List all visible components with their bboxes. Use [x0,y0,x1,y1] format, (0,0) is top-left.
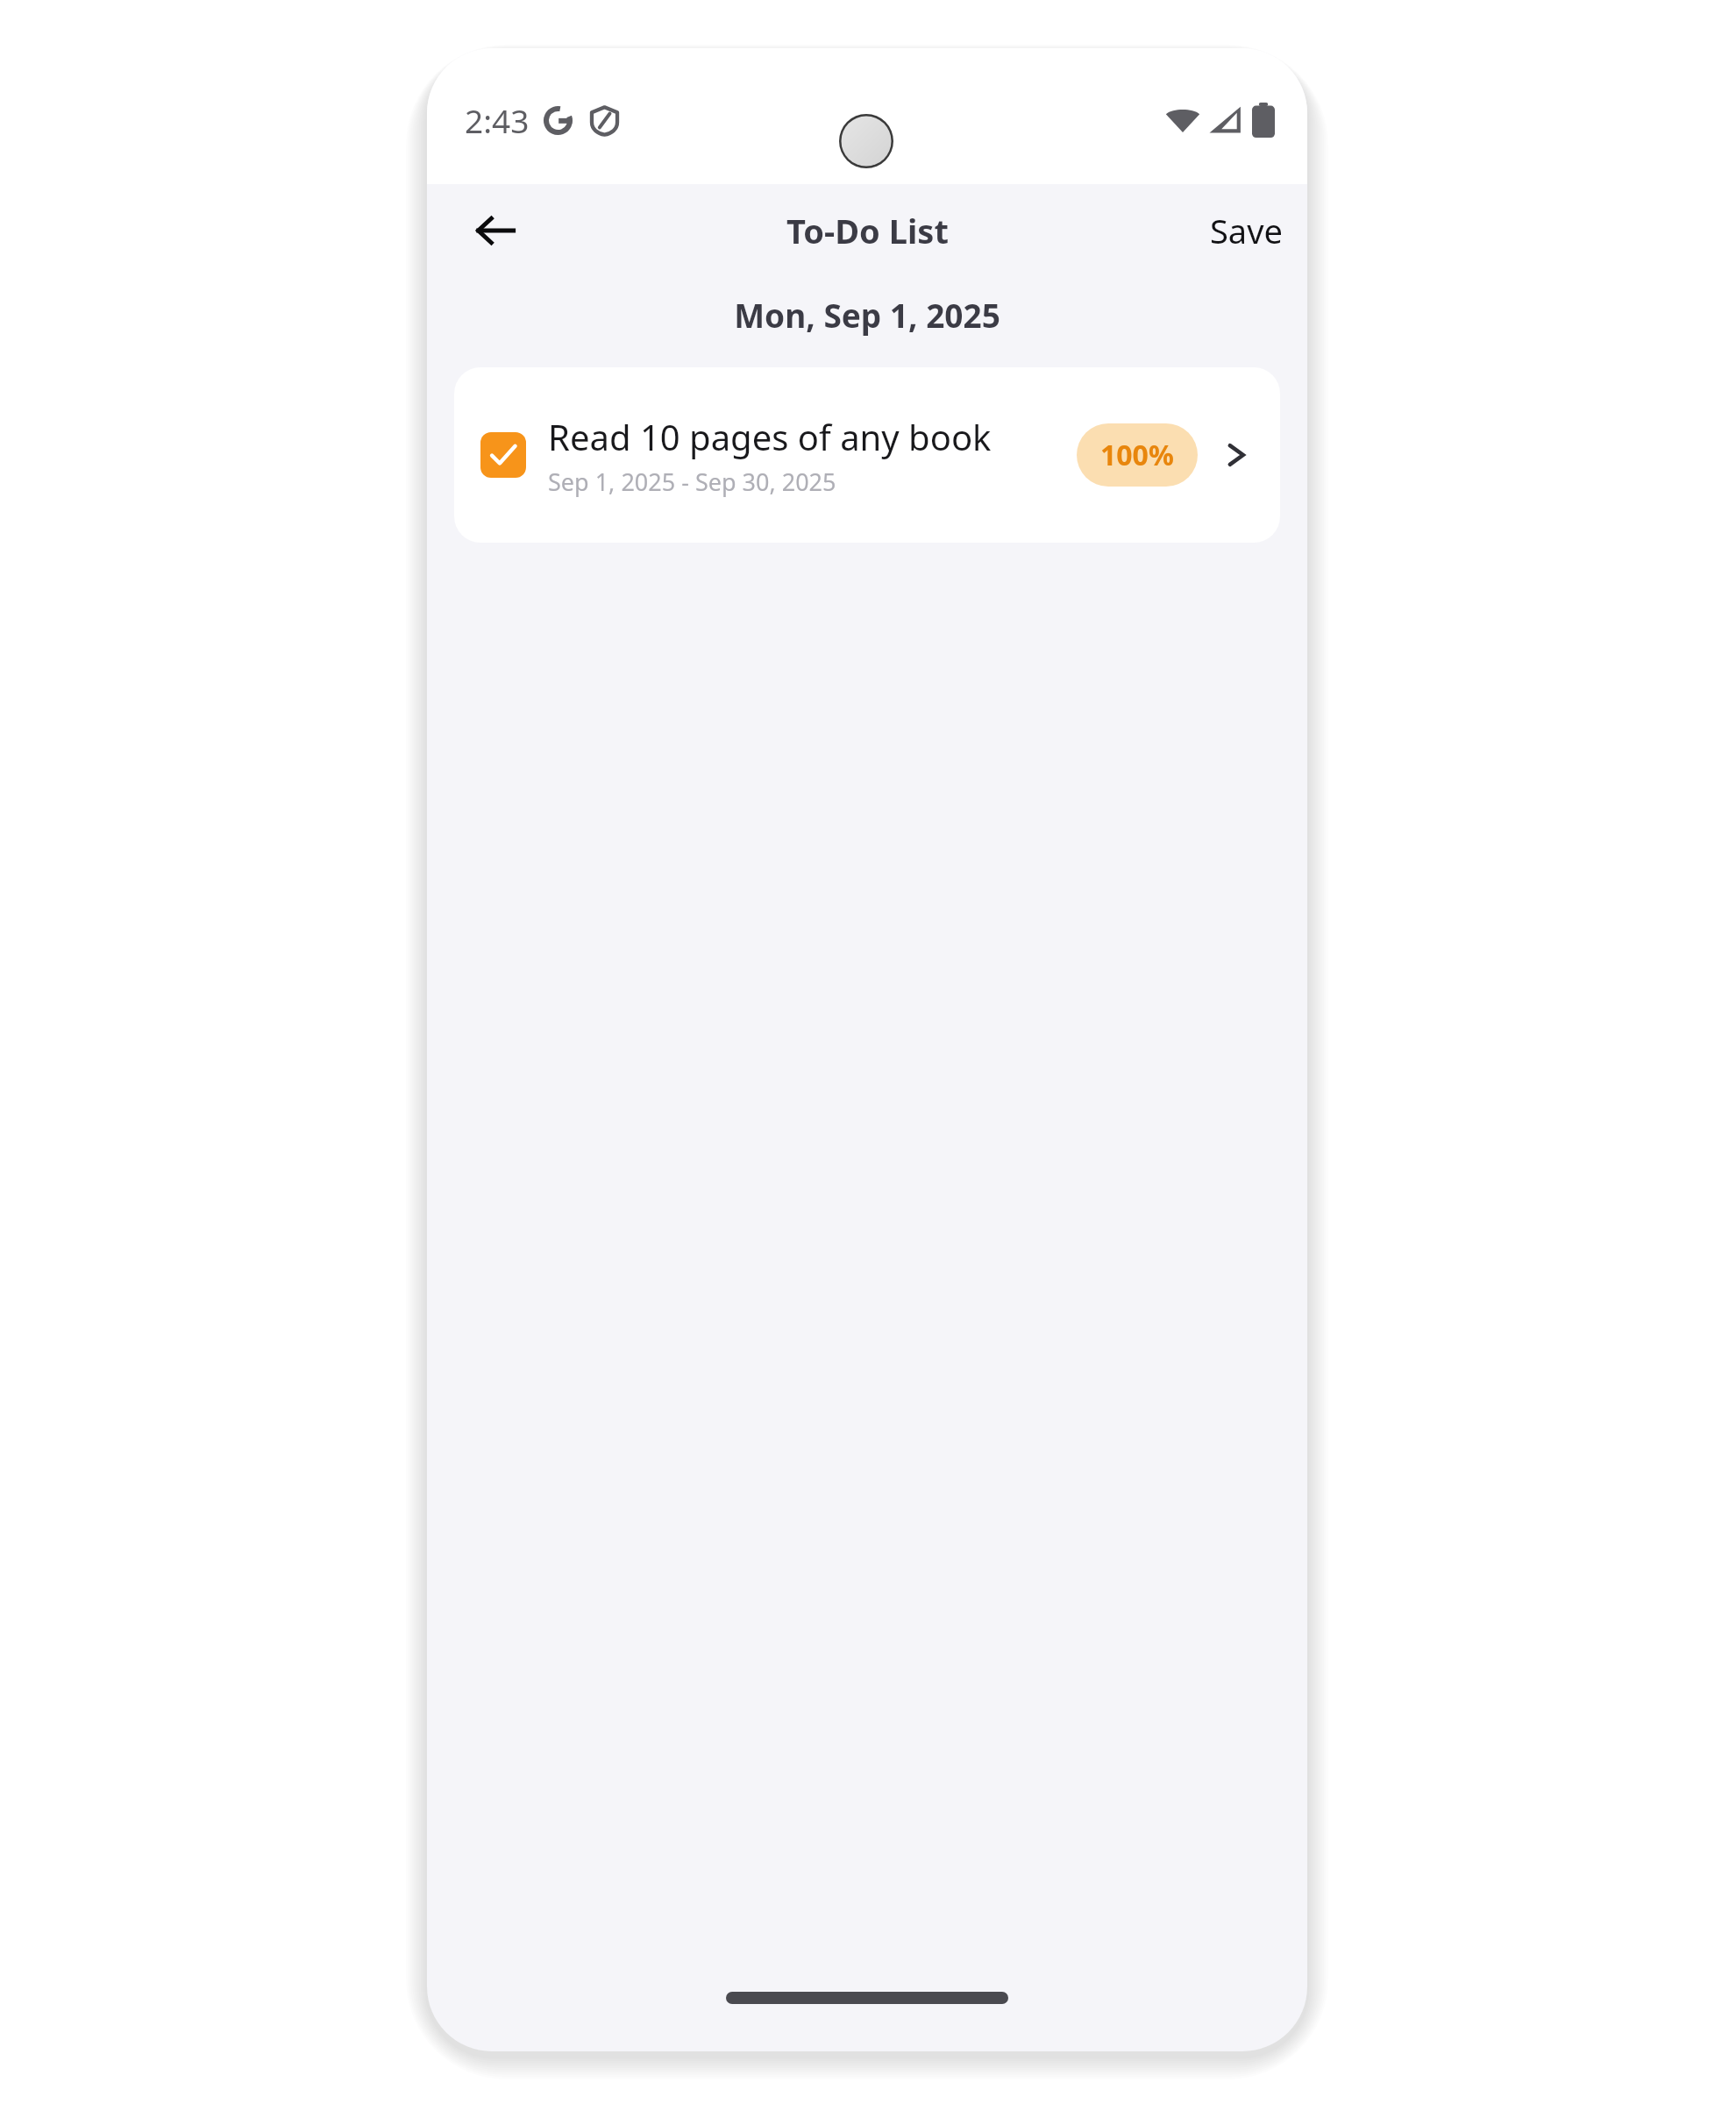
staticText: Sep 1, 2025 - Sep 30, 2025 [548,466,836,498]
button[interactable]: Back [453,188,537,273]
staticText: 100% [1100,436,1174,474]
button[interactable]: 100% [1077,423,1198,487]
staticText: Read 10 pages of any book [548,413,992,460]
button[interactable]: Open task details [1212,430,1261,480]
staticText: 2:43 [465,98,530,142]
button[interactable]: Task completed [454,367,1280,543]
staticText: Save [1210,208,1283,253]
staticText: To-Do List [786,208,949,253]
button[interactable]: Save [1185,195,1307,266]
button[interactable]: Task completed [480,432,526,478]
staticText: Mon, Sep 1, 2025 [734,293,1000,337]
